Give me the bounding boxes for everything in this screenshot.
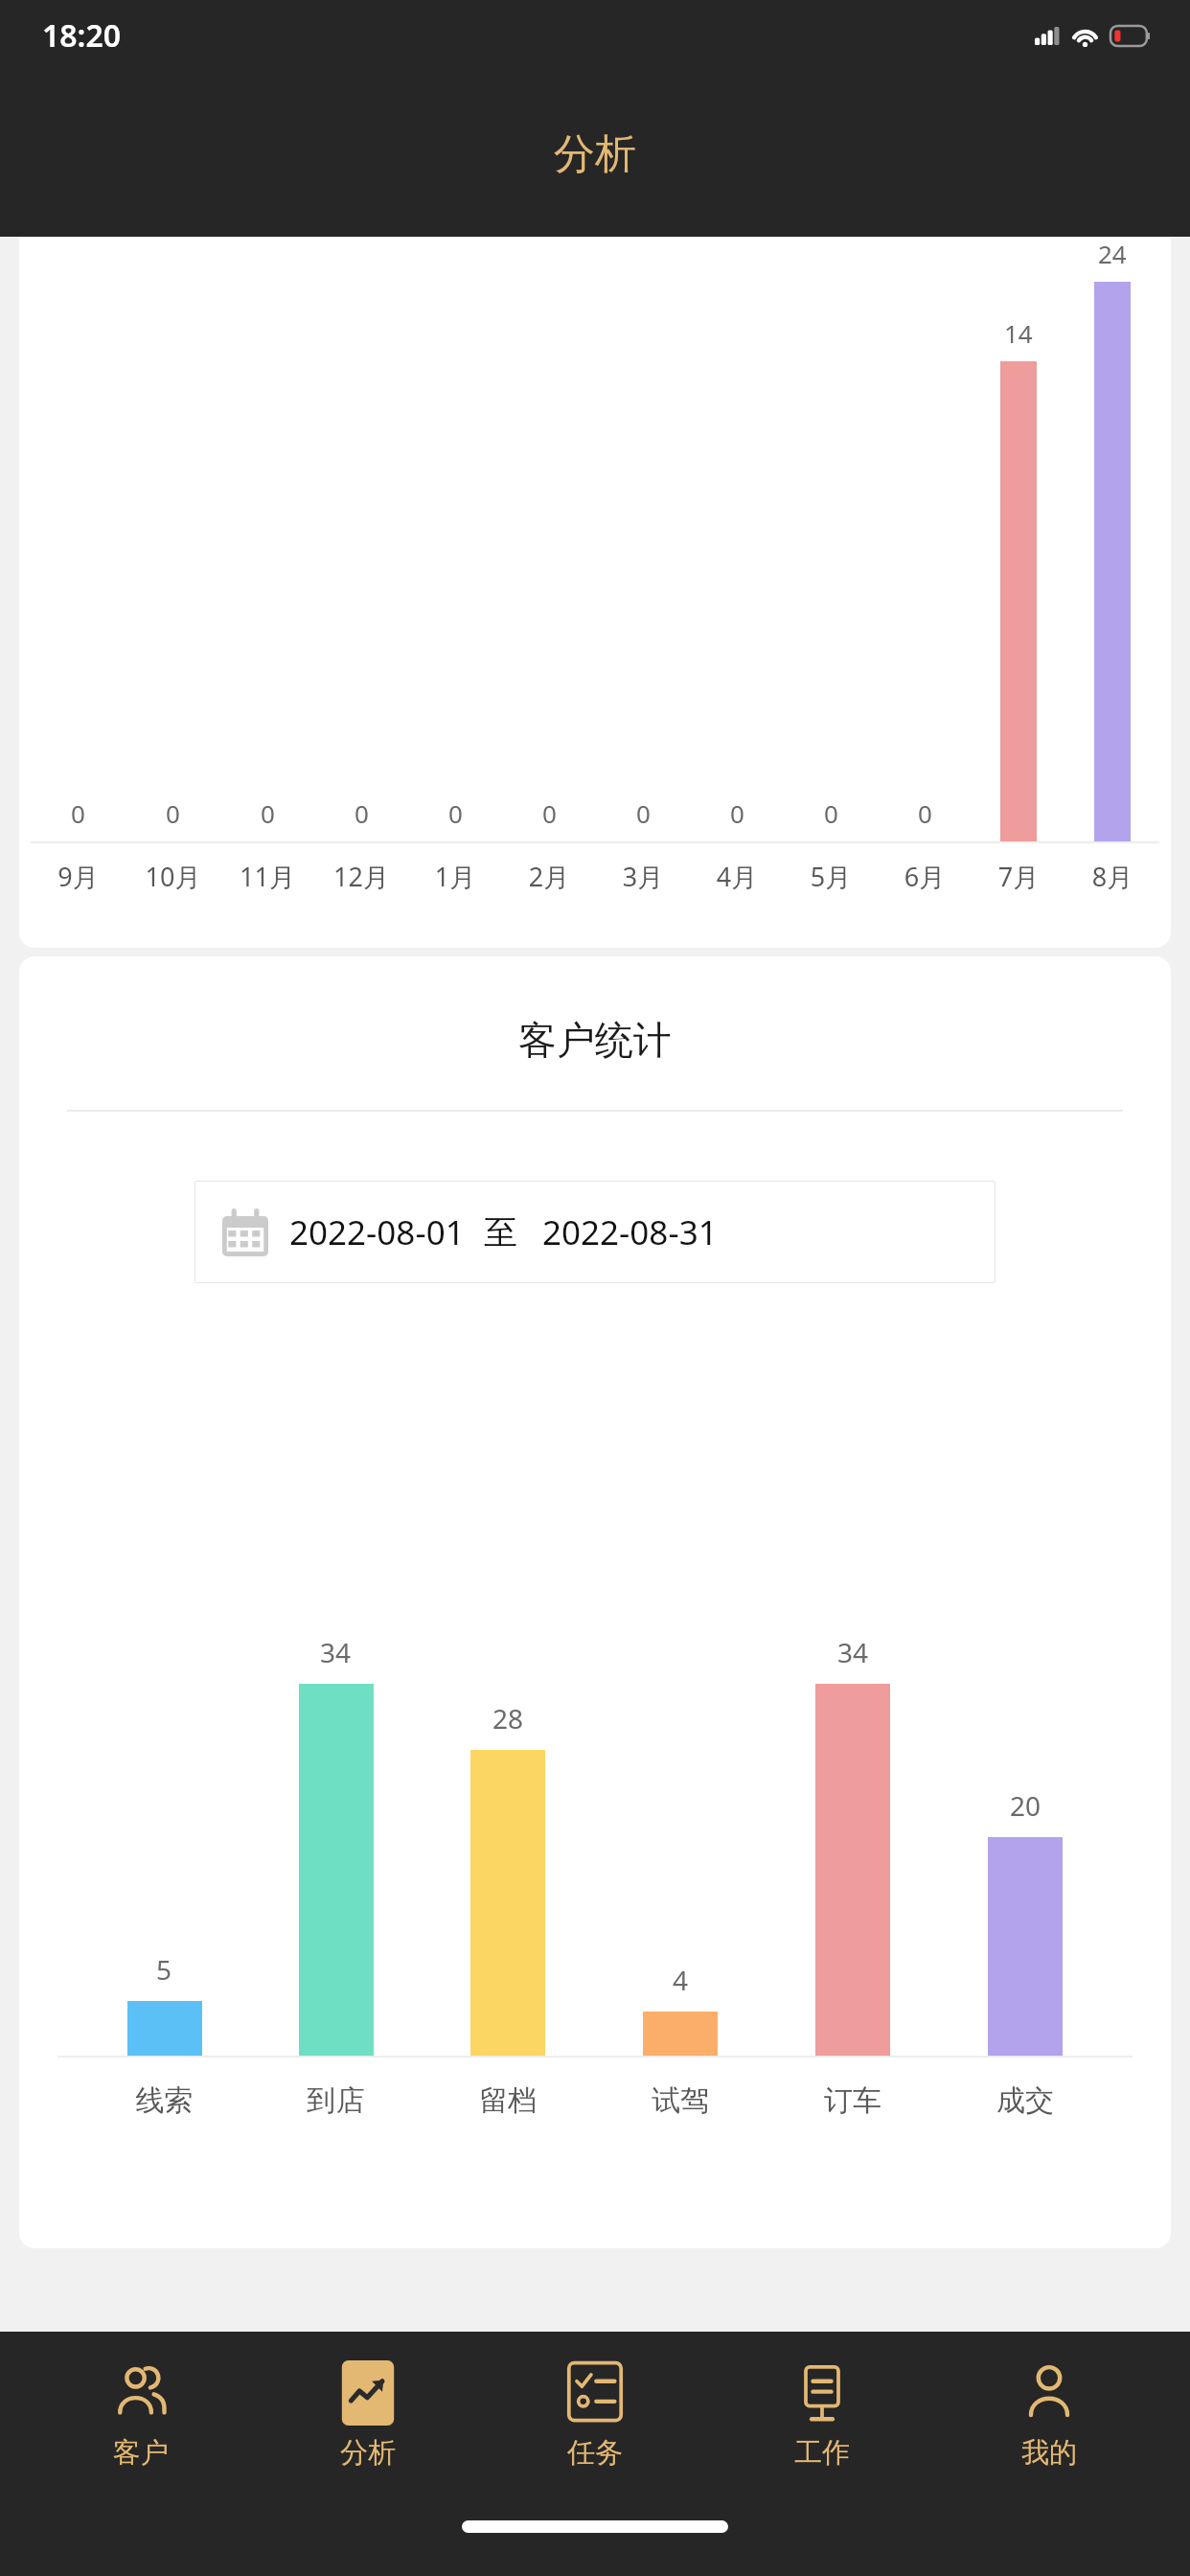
button[interactable]: 客户: [55, 2355, 227, 2476]
staticText: 20: [1010, 1787, 1041, 1824]
staticText: 10月: [126, 859, 220, 894]
staticText: 2022-08-31: [542, 1209, 718, 1255]
staticText: 0: [636, 796, 651, 830]
staticText: 14: [1004, 316, 1033, 350]
staticText: 0: [71, 796, 85, 830]
staticText: 1月: [408, 859, 502, 894]
staticText: 3月: [596, 859, 690, 894]
staticText: 4月: [690, 859, 784, 894]
staticText: 6月: [878, 859, 972, 894]
staticText: 客户统计: [19, 1016, 1171, 1064]
button[interactable]: 我的: [963, 2355, 1135, 2476]
staticText: 我的: [1021, 2435, 1077, 2471]
staticText: 28: [492, 1700, 524, 1736]
staticText: 0: [542, 796, 557, 830]
staticText: 至: [484, 1211, 517, 1253]
staticText: 0: [918, 796, 932, 830]
staticText: 任务: [567, 2435, 623, 2471]
staticText: 5: [156, 1951, 172, 1988]
staticText: 试驾: [594, 2082, 767, 2119]
staticText: 线索: [79, 2082, 250, 2119]
staticText: 24: [1098, 237, 1127, 270]
staticText: 18:20: [42, 14, 122, 57]
staticText: 5月: [784, 859, 878, 894]
staticText: 成交: [939, 2082, 1111, 2119]
staticText: 34: [320, 1634, 352, 1670]
staticText: 0: [730, 796, 744, 830]
button[interactable]: 工作: [736, 2355, 908, 2476]
staticText: 到店: [250, 2082, 422, 2119]
staticText: 8月: [1065, 859, 1159, 894]
staticText: 分析: [340, 2435, 396, 2471]
staticText: 0: [355, 796, 369, 830]
staticText: 0: [166, 796, 180, 830]
staticText: 0: [824, 796, 838, 830]
staticText: 11月: [220, 859, 314, 894]
staticText: 7月: [972, 859, 1065, 894]
staticText: 留档: [422, 2082, 594, 2119]
staticText: 9月: [31, 859, 126, 894]
staticText: 0: [448, 796, 463, 830]
staticText: 工作: [794, 2435, 850, 2471]
button[interactable]: Select date range: [195, 1181, 995, 1283]
staticText: 34: [837, 1634, 869, 1670]
staticText: 12月: [314, 859, 408, 894]
staticText: 分析: [554, 128, 636, 180]
staticText: 2022-08-01: [289, 1209, 465, 1255]
staticText: 客户: [113, 2435, 169, 2471]
staticText: 4: [673, 1962, 689, 1998]
button[interactable]: 任务: [509, 2355, 681, 2476]
staticText: 2月: [502, 859, 596, 894]
staticText: 0: [261, 796, 275, 830]
button[interactable]: 分析: [282, 2355, 454, 2476]
staticText: 订车: [767, 2082, 939, 2119]
